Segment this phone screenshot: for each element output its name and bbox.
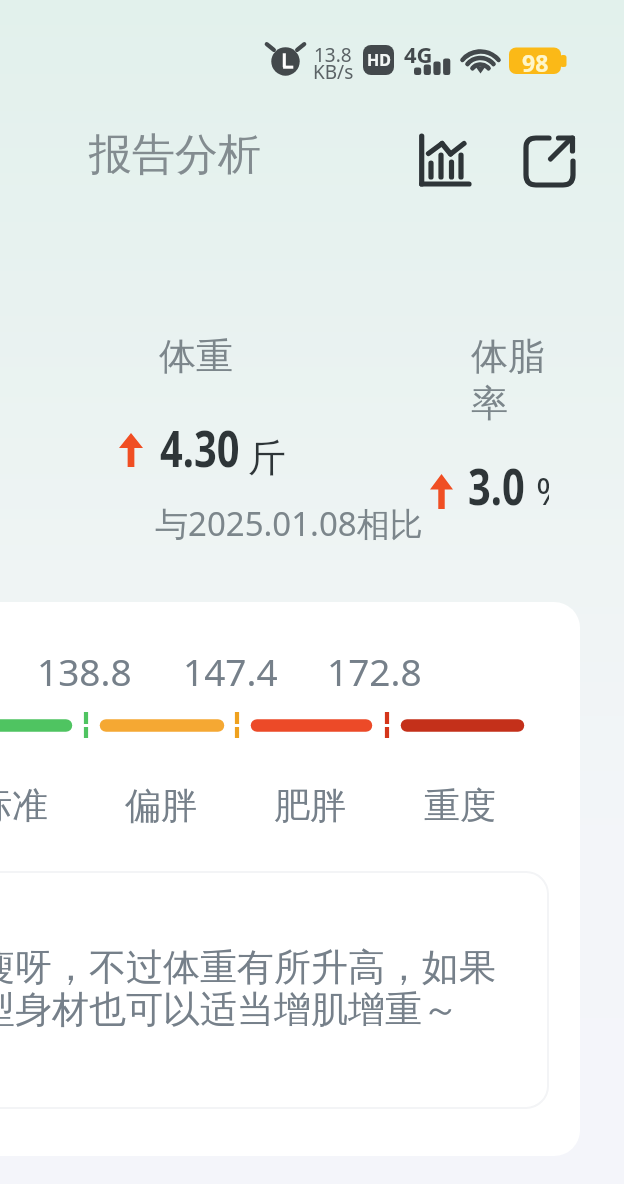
- staticText: HD: [367, 49, 391, 71]
- button[interactable]: Chart: [411, 126, 477, 192]
- staticText: 4.30: [160, 412, 240, 481]
- staticText: 13.8: [314, 42, 352, 68]
- staticText: 4G: [404, 39, 433, 69]
- staticText: 体重: [159, 333, 233, 380]
- staticText: 偏胖: [125, 783, 197, 828]
- staticText: 肥胖: [274, 783, 346, 828]
- staticText: 标准: [0, 783, 48, 828]
- staticText: %: [536, 464, 549, 516]
- staticText: 重度: [424, 783, 496, 828]
- staticText: 体脂: [471, 333, 545, 380]
- staticText: 98: [522, 47, 549, 74]
- staticText: 想要更健康体型身材也可以适当增肌增重～: [0, 986, 459, 1033]
- staticText: 您的体型比较瘦呀，不过体重有所升高，如果: [0, 944, 496, 991]
- staticText: 率: [471, 380, 508, 427]
- staticText: 3.0: [468, 450, 525, 519]
- button[interactable]: Share: [515, 127, 581, 193]
- staticText: 斤: [248, 434, 286, 482]
- staticText: 138.8: [37, 646, 132, 696]
- staticText: 与2025.01.08相比: [155, 501, 423, 546]
- staticText: 147.4: [183, 646, 278, 696]
- staticText: 172.8: [327, 646, 422, 696]
- staticText: 报告分析: [89, 128, 261, 182]
- staticText: KB/s: [313, 59, 354, 85]
